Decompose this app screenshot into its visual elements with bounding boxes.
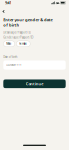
button[interactable]: DD/MM/YYYY <box>3 60 66 70</box>
staticText: Gender as per Passport / ID <box>3 36 33 39</box>
button[interactable]: Female <box>16 41 30 47</box>
staticText: Details as per Passport / ID <box>3 31 31 34</box>
staticText: Female <box>19 42 27 45</box>
staticText: Enter your gender & date of birth <box>3 17 52 28</box>
button[interactable]: Back <box>0 5 8 17</box>
staticText: Date of birth <box>3 55 18 59</box>
staticText: DD/MM/YYYY <box>6 63 22 67</box>
button[interactable]: Male <box>3 41 15 47</box>
button[interactable]: Continue <box>3 79 66 88</box>
staticText: Continue <box>26 81 43 86</box>
staticText: 9:41 <box>5 0 11 5</box>
staticText: Male <box>6 42 12 45</box>
